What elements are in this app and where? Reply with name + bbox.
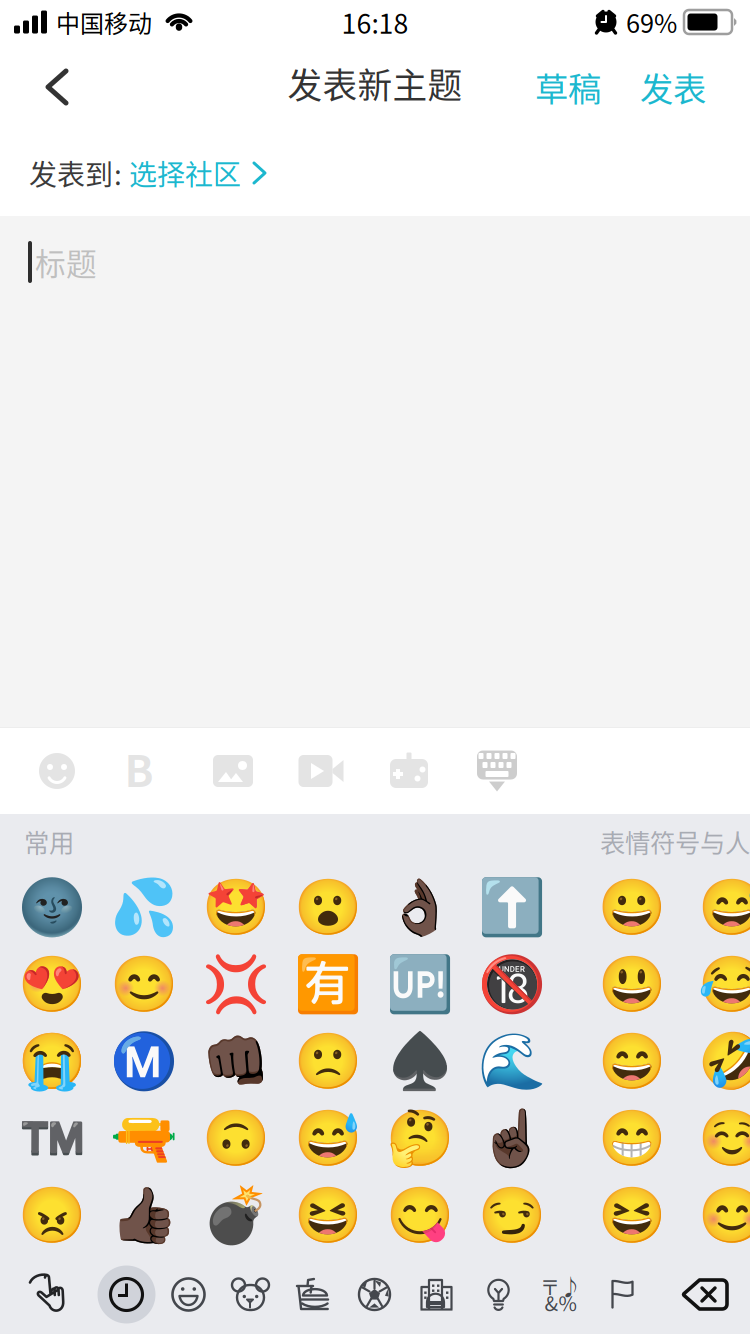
staticText: Ⓜ️: [110, 1029, 178, 1094]
button[interactable]: Emoji: [190, 869, 282, 946]
button[interactable]: Emoji: [586, 1100, 678, 1177]
staticText: B: [124, 738, 153, 799]
button[interactable]: Emoji: [190, 1023, 282, 1100]
staticText: 😊: [110, 952, 178, 1017]
staticText: 😅: [294, 1106, 362, 1171]
button[interactable]: Emoji: [98, 946, 190, 1023]
staticText: 中国移动: [56, 5, 152, 39]
button[interactable]: Keyboard: [453, 728, 541, 814]
staticText: 发表新主题: [287, 58, 462, 109]
button[interactable]: Emoji: [282, 1177, 374, 1254]
staticText: 🙃: [202, 1106, 270, 1171]
button[interactable]: 发表: [630, 44, 716, 130]
staticText: 😊: [698, 1183, 750, 1248]
staticText: 😀: [598, 875, 666, 940]
button[interactable]: Back: [20, 44, 94, 130]
staticText: 💣: [202, 1183, 270, 1248]
button[interactable]: Emoji: [6, 1023, 98, 1100]
staticText: ♠️: [386, 1029, 454, 1094]
button[interactable]: Emoji: [13, 728, 101, 814]
staticText: 16:18: [341, 3, 408, 41]
button[interactable]: Emoji: [586, 946, 678, 1023]
button[interactable]: Emoji: [190, 1177, 282, 1254]
staticText: 😆: [598, 1183, 666, 1248]
staticText: 🌊: [478, 1029, 546, 1094]
staticText: 69%: [626, 4, 677, 40]
button[interactable]: Flags: [591, 1255, 653, 1334]
button[interactable]: Emoji: [190, 946, 282, 1023]
button[interactable]: Emoji: [374, 1100, 466, 1177]
staticText: 🔞: [478, 952, 546, 1017]
staticText: 😋: [386, 1183, 454, 1248]
button[interactable]: Emoji: [282, 1100, 374, 1177]
button[interactable]: Emoji: [98, 1177, 190, 1254]
staticText: 😂: [698, 952, 750, 1017]
button[interactable]: Emoji: [6, 869, 98, 946]
button[interactable]: Emoji: [6, 946, 98, 1023]
button[interactable]: Emoji: [586, 1177, 678, 1254]
button[interactable]: Video: [277, 728, 365, 814]
button[interactable]: Emoji: [282, 946, 374, 1023]
staticText: 〒: [540, 1272, 560, 1301]
button[interactable]: Objects: [467, 1255, 529, 1334]
button[interactable]: Emoji: [374, 1023, 466, 1100]
staticText: 🔫: [110, 1106, 178, 1171]
button[interactable]: Emoji: [466, 1177, 558, 1254]
button[interactable]: Smileys: [157, 1255, 219, 1334]
staticText: 😮: [294, 875, 362, 940]
button[interactable]: Emoji: [686, 1177, 750, 1254]
button[interactable]: Photo: [189, 728, 277, 814]
staticText: ™️: [18, 1106, 86, 1171]
button[interactable]: Emoji: [466, 869, 558, 946]
staticText: 🙁: [294, 1029, 362, 1094]
button[interactable]: Emoji: [6, 1177, 98, 1254]
staticText: 😄: [598, 1029, 666, 1094]
staticText: 😆: [294, 1183, 362, 1248]
button[interactable]: Activities: [343, 1255, 405, 1334]
button[interactable]: Emoji: [374, 946, 466, 1023]
button[interactable]: Emoji: [686, 1100, 750, 1177]
button[interactable]: Symbols: [529, 1255, 591, 1334]
staticText: 🤩: [202, 875, 270, 940]
button[interactable]: Emoji: [466, 1100, 558, 1177]
button[interactable]: 草稿: [525, 44, 611, 130]
staticText: 表情符号与人: [600, 823, 750, 860]
staticText: 😃: [598, 952, 666, 1017]
staticText: 👌🏿: [386, 875, 454, 940]
staticText: 发表到: [29, 153, 113, 193]
button[interactable]: Recently used: [95, 1255, 157, 1334]
button[interactable]: Food and drink: [281, 1255, 343, 1334]
button[interactable]: Emoji: [282, 869, 374, 946]
button[interactable]: Emoji: [6, 1100, 98, 1177]
staticText: &%: [544, 1288, 576, 1317]
button[interactable]: Emoji: [466, 946, 558, 1023]
button[interactable]: Emoji: [98, 1100, 190, 1177]
button[interactable]: Game: [365, 728, 453, 814]
button[interactable]: Emoji: [466, 1023, 558, 1100]
staticText: 常用: [24, 823, 74, 860]
button[interactable]: Emoji: [686, 946, 750, 1023]
staticText: 草稿: [535, 63, 601, 111]
button[interactable]: Bold: [101, 728, 189, 814]
button[interactable]: Emoji: [98, 869, 190, 946]
button[interactable]: 选择社区: [129, 130, 271, 216]
staticText: 🤣: [698, 1029, 750, 1094]
button[interactable]: Emoji: [586, 1023, 678, 1100]
button[interactable]: Emoji: [374, 869, 466, 946]
staticText: :: [114, 153, 122, 193]
button[interactable]: Frequently used: [9, 1255, 95, 1334]
button[interactable]: Delete: [661, 1255, 749, 1334]
button[interactable]: Emoji: [190, 1100, 282, 1177]
button[interactable]: Emoji: [686, 869, 750, 946]
staticText: 😭: [18, 1029, 86, 1094]
staticText: 😏: [478, 1183, 546, 1248]
button[interactable]: Animals and nature: [219, 1255, 281, 1334]
button[interactable]: Emoji: [98, 1023, 190, 1100]
button[interactable]: Emoji: [282, 1023, 374, 1100]
button[interactable]: Emoji: [686, 1023, 750, 1100]
button[interactable]: Emoji: [586, 869, 678, 946]
button[interactable]: Emoji: [374, 1177, 466, 1254]
button[interactable]: Travel and places: [405, 1255, 467, 1334]
staticText: ♪: [560, 1270, 581, 1301]
staticText: 标题: [35, 240, 97, 284]
